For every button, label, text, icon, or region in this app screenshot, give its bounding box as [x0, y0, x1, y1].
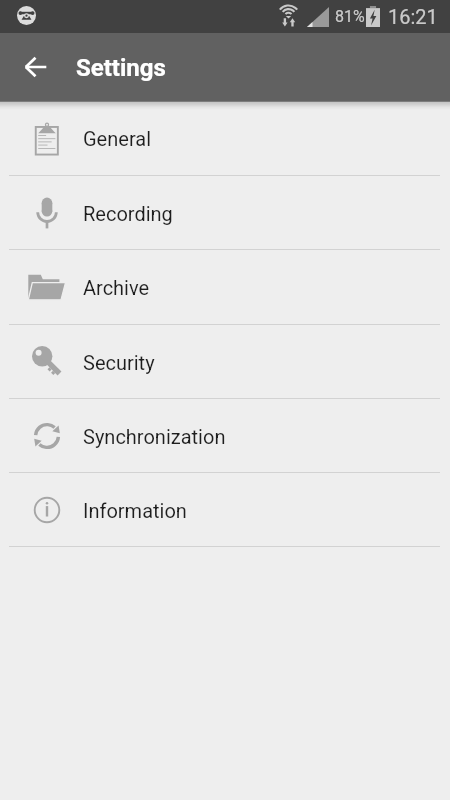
button[interactable]: Synchronization [0, 399, 450, 473]
staticText: Information [83, 499, 187, 522]
staticText: Archive [83, 276, 150, 299]
button[interactable]: Information [0, 473, 450, 547]
button[interactable]: Back [11, 43, 59, 91]
button[interactable]: Archive [0, 250, 450, 325]
button[interactable]: General [0, 101, 450, 176]
staticText: Settings [76, 54, 166, 82]
staticText: Recording [83, 202, 173, 225]
staticText: General [83, 127, 152, 150]
staticText: Synchronization [83, 425, 226, 448]
staticText: 16:21 [388, 5, 438, 28]
button[interactable]: Security [0, 325, 450, 399]
staticText: Security [83, 351, 155, 374]
staticText: 81% [335, 7, 365, 26]
button[interactable]: Recording [0, 176, 450, 250]
